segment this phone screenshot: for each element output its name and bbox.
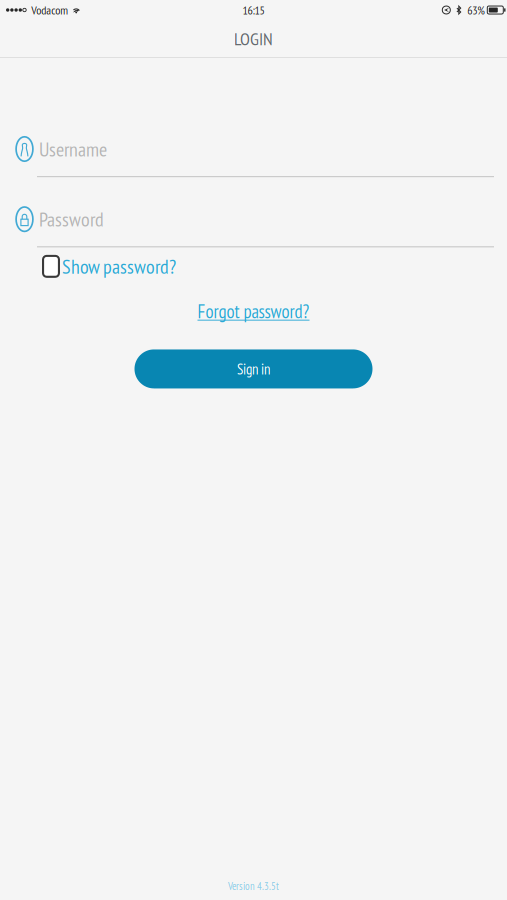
- button[interactable]: Forgot password?: [197, 299, 309, 323]
- staticText: LOGIN: [234, 27, 273, 50]
- staticText: Forgot password?: [197, 299, 309, 323]
- staticText: Password: [39, 206, 104, 232]
- staticText: Show password?: [62, 253, 176, 279]
- staticText: Username: [39, 136, 107, 162]
- button[interactable]: Sign in: [134, 349, 372, 388]
- button[interactable]: Username: [15, 136, 494, 177]
- button[interactable]: Password: [15, 206, 494, 247]
- staticText: Vodacom: [31, 2, 68, 18]
- staticText: 16:15: [242, 2, 264, 18]
- staticText: 63%: [467, 2, 485, 18]
- staticText: Version 4.3.5t: [228, 879, 279, 893]
- staticText: Sign in: [237, 359, 270, 378]
- button[interactable]: Show password?: [42, 253, 176, 279]
